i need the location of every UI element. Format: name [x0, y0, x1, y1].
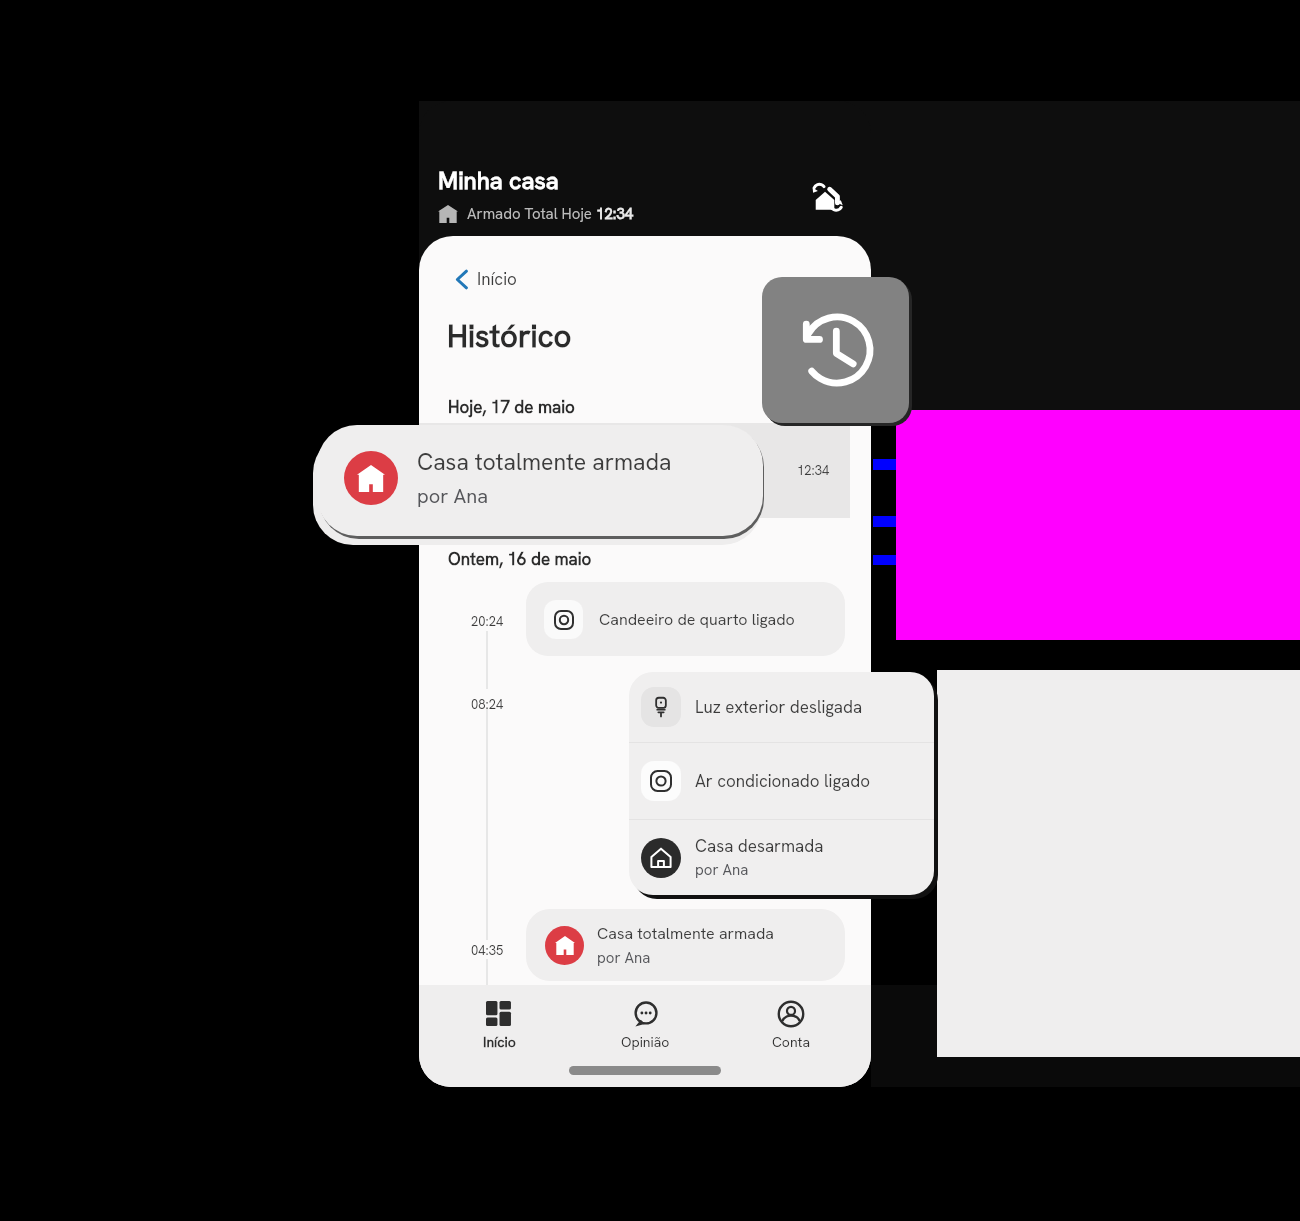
staticText: Início [477, 268, 517, 290]
button[interactable]: Conta [718, 985, 864, 1057]
staticText: por Ana [417, 483, 489, 509]
button[interactable]: Candeeiro de quarto ligado [526, 582, 845, 656]
staticText: Casa desarmada [695, 835, 824, 857]
staticText: 12:34 [596, 204, 634, 224]
staticText: por Ana [695, 860, 749, 880]
staticText: Hoje, 17 de maio [448, 396, 575, 418]
staticText: Ar condicionado ligado [695, 770, 870, 792]
button[interactable]: Ar condicionado ligado [629, 743, 934, 819]
button[interactable]: Casa totalmente armada [526, 909, 845, 981]
staticText: Candeeiro de quarto ligado [599, 609, 795, 630]
button[interactable]: Início [426, 985, 572, 1057]
staticText: Minha casa [438, 165, 559, 196]
staticText: 12:34 [797, 462, 830, 479]
staticText: Casa totalmente armada [597, 923, 774, 944]
button[interactable]: Casa desarmada [629, 820, 934, 895]
button[interactable]: Histórico [762, 277, 909, 423]
staticText: Histórico [447, 316, 572, 356]
button[interactable]: Opinião [572, 985, 718, 1057]
staticText: por Ana [597, 948, 651, 968]
staticText: Início [483, 1033, 516, 1051]
staticText: 04:35 [471, 942, 504, 959]
staticText: 20:24 [471, 613, 504, 630]
button[interactable]: Casa totalmente armada [317, 425, 763, 536]
staticText: Luz exterior desligada [695, 696, 863, 718]
staticText: Ontem, 16 de maio [448, 548, 592, 570]
button[interactable]: Luz exterior desligada [629, 672, 934, 742]
staticText: Opinião [621, 1033, 670, 1051]
button[interactable]: Início [455, 265, 517, 293]
staticText: Conta [772, 1033, 810, 1051]
staticText: 08:24 [471, 696, 504, 713]
staticText: Casa totalmente armada [417, 447, 672, 477]
staticText: Armado Total Hoje [467, 204, 596, 224]
button[interactable]: Mudar de casa [810, 179, 844, 213]
